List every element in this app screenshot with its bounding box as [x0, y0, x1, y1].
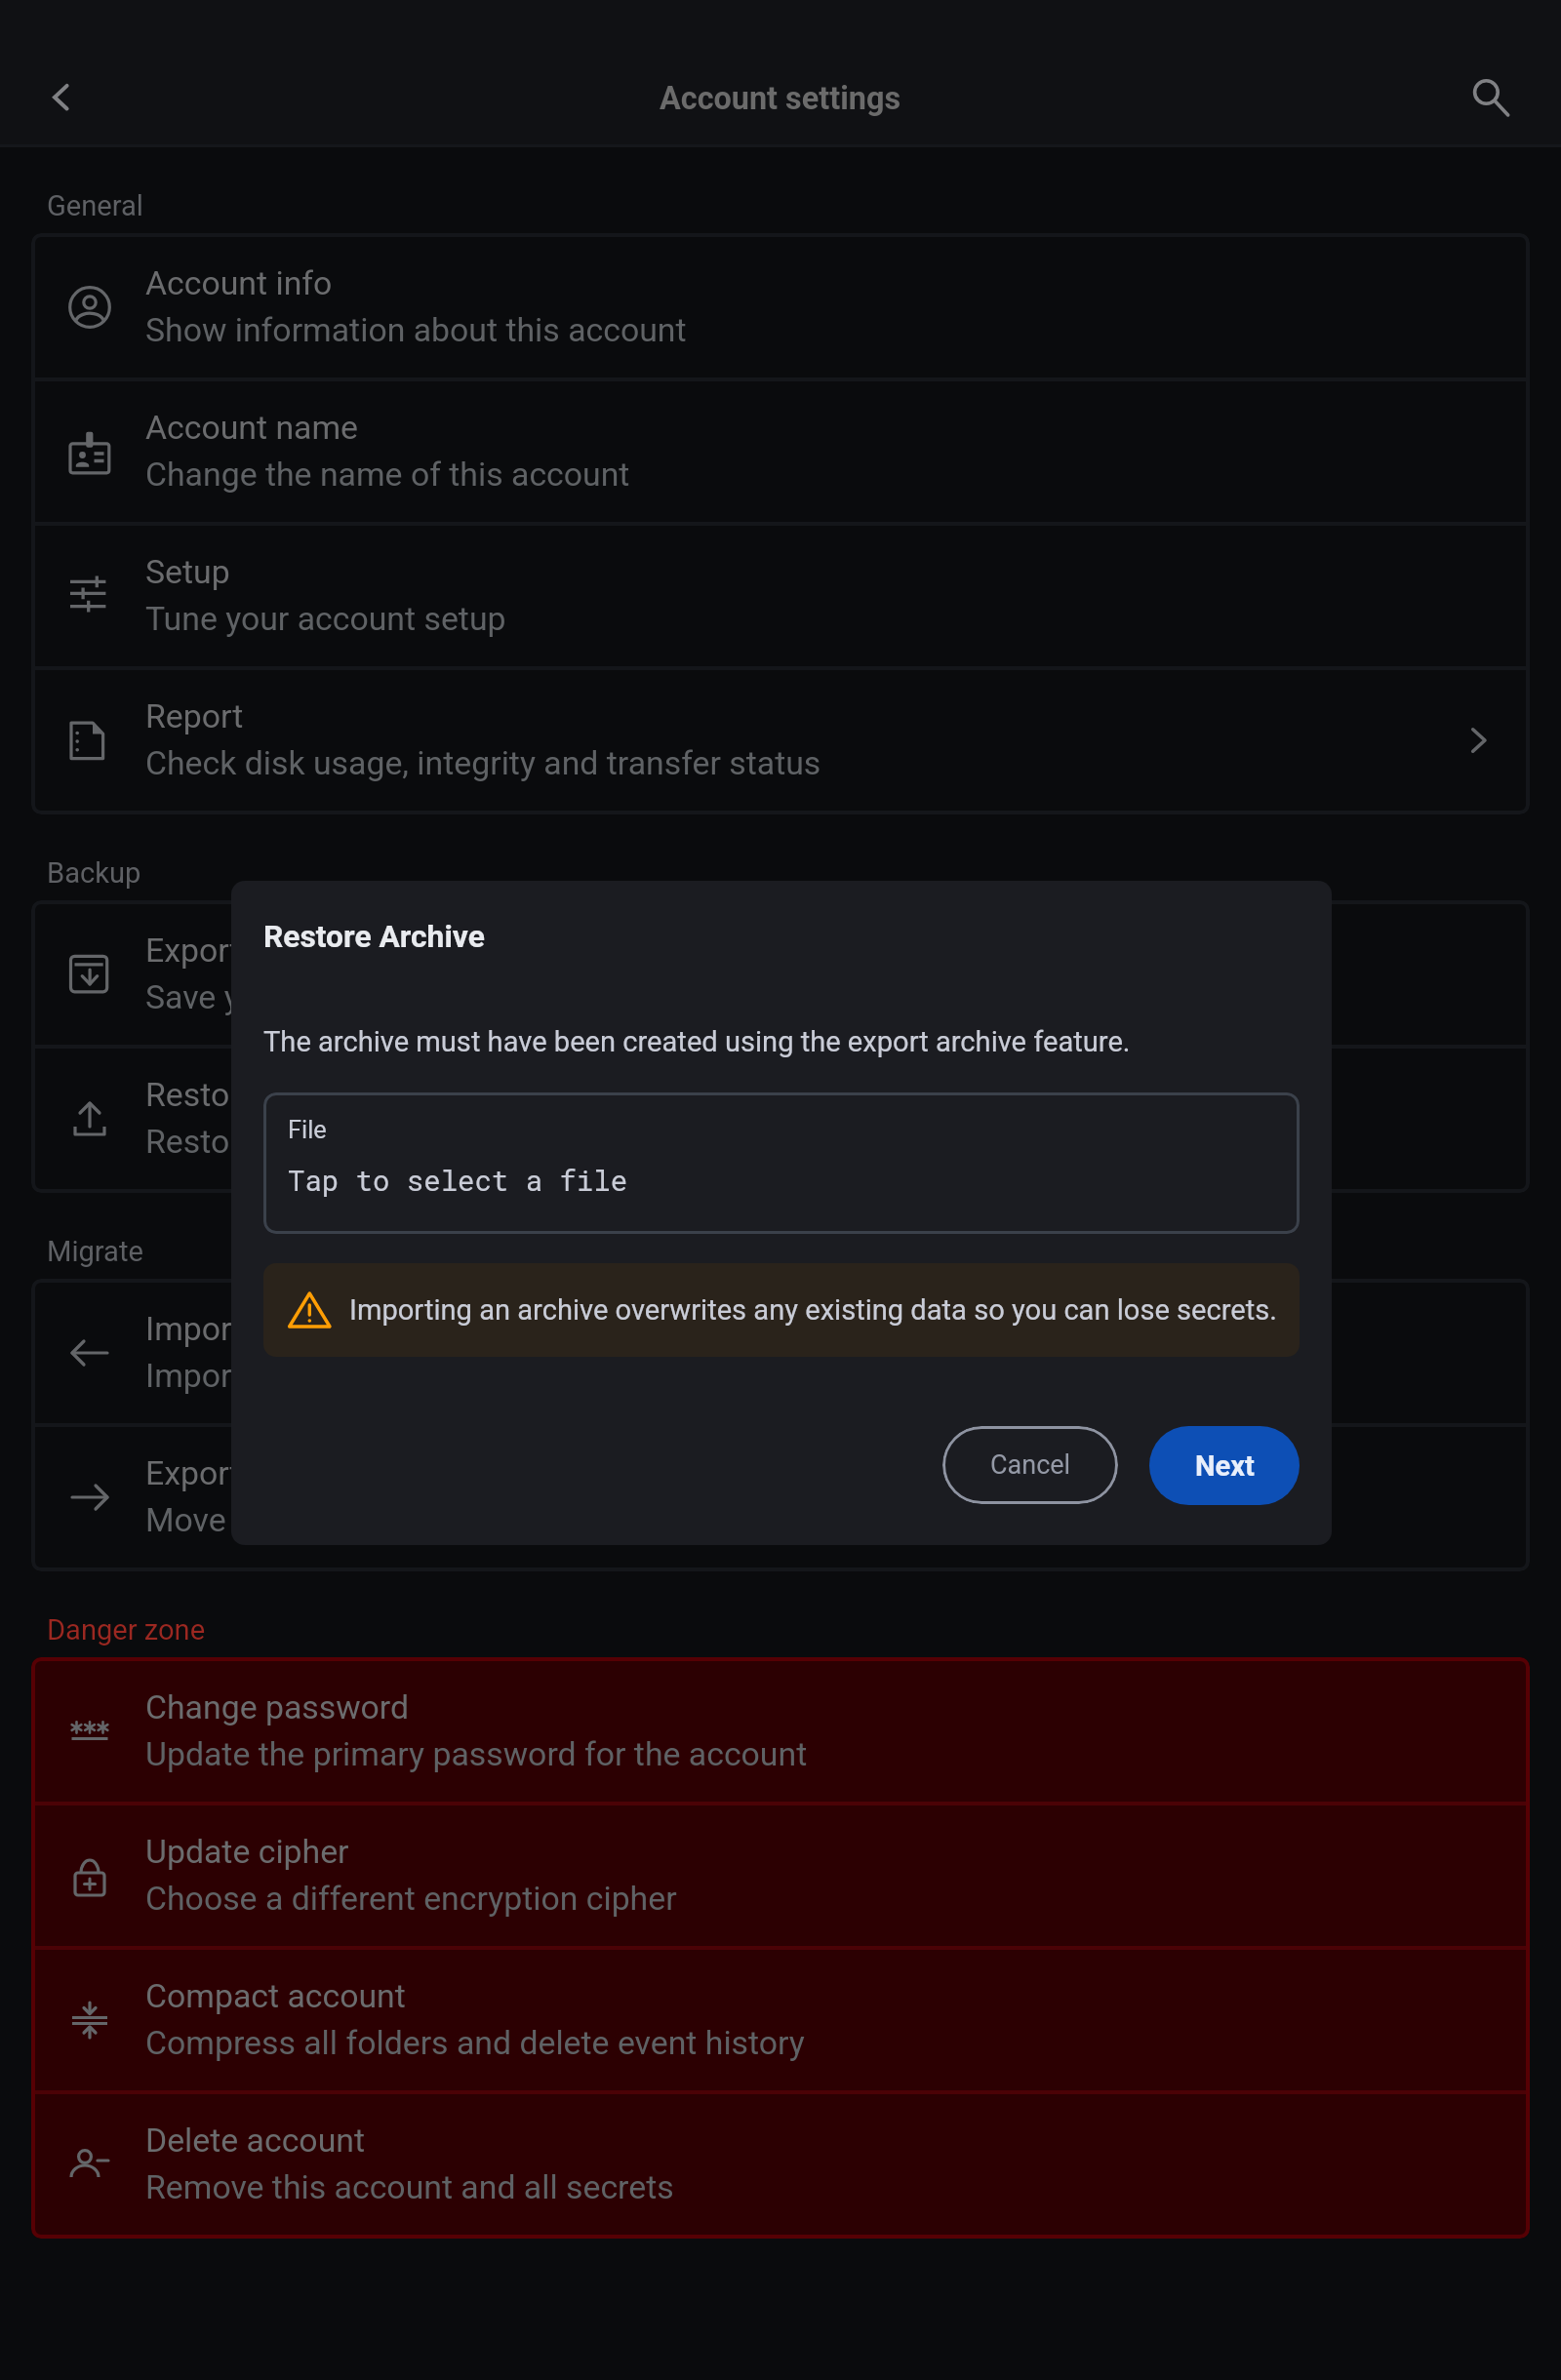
staticText: Danger zone: [47, 1613, 206, 1646]
button[interactable]: Change password: [35, 1661, 1526, 1802]
staticText: Compact account: [145, 1977, 406, 2016]
staticText: Restore Archive: [263, 919, 485, 955]
staticText: Backup: [47, 856, 141, 890]
button[interactable]: Report: [35, 670, 1526, 811]
staticText: Remove this account and all secrets: [145, 2168, 674, 2207]
staticText: Update cipher: [145, 1833, 349, 1872]
staticText: Tap to select a file: [288, 1162, 628, 1199]
staticText: Tune your account setup: [145, 600, 506, 639]
staticText: Change password: [145, 1688, 410, 1727]
staticText: Setup: [145, 553, 230, 592]
staticText: Choose a different encryption cipher: [145, 1880, 677, 1919]
staticText: Account settings: [660, 80, 901, 117]
staticText: Compress all folders and delete event hi…: [145, 2024, 805, 2063]
button[interactable]: Update cipher: [35, 1805, 1526, 1946]
staticText: File: [288, 1116, 327, 1145]
staticText: The archive must have been created using…: [263, 1025, 1131, 1058]
staticText: Change the name of this account: [145, 456, 630, 495]
button[interactable]: Delete account: [35, 2094, 1526, 2235]
button[interactable]: Setup: [35, 526, 1526, 666]
button[interactable]: Compact account: [35, 1950, 1526, 2090]
staticText: Cancel: [990, 1449, 1071, 1481]
staticText: Account name: [145, 409, 359, 448]
staticText: Move this account to another device: [145, 1501, 676, 1540]
button[interactable]: Import account: [35, 1283, 1526, 1423]
button[interactable]: File: [263, 1092, 1300, 1234]
button[interactable]: Next: [1149, 1426, 1300, 1505]
staticText: General: [47, 189, 143, 222]
staticText: Save your data into an encrypted file: [145, 978, 675, 1017]
staticText: Import an account from another device: [145, 1357, 716, 1396]
staticText: Check disk usage, integrity and transfer…: [145, 744, 821, 783]
staticText: Update the primary password for the acco…: [145, 1735, 808, 1774]
button[interactable]: Export account: [35, 1427, 1526, 1567]
button[interactable]: Account info: [35, 237, 1526, 377]
button[interactable]: Cancel: [942, 1426, 1118, 1504]
button[interactable]: Restore archive: [35, 1049, 1526, 1189]
staticText: Next: [1195, 1449, 1255, 1483]
staticText: Importing an archive overwrites any exis…: [349, 1293, 1277, 1327]
staticText: Show information about this account: [145, 311, 687, 350]
staticText: Import account: [145, 1310, 371, 1349]
button[interactable]: Back: [20, 57, 101, 139]
button[interactable]: Export archive: [35, 904, 1526, 1045]
staticText: Account info: [145, 264, 333, 303]
button[interactable]: Account name: [35, 381, 1526, 522]
staticText: Restore archive: [145, 1076, 372, 1115]
staticText: Migrate: [47, 1235, 143, 1268]
staticText: Delete account: [145, 2122, 365, 2161]
staticText: Restore your data from an archive: [145, 1123, 640, 1162]
button[interactable]: Search: [1450, 57, 1532, 139]
staticText: Export archive: [145, 932, 355, 971]
staticText: Export account: [145, 1454, 368, 1493]
staticText: Report: [145, 697, 244, 736]
